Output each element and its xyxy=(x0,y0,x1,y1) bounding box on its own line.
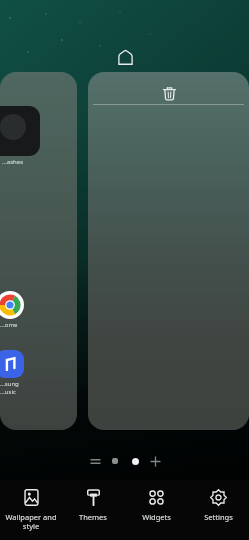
staticText: ...sung ...usic xyxy=(0,380,19,396)
button[interactable]: Home page xyxy=(112,44,138,70)
button[interactable]: Wallpaper and style xyxy=(0,480,62,532)
staticText: Widgets xyxy=(142,512,171,522)
staticText: ...ome xyxy=(0,321,18,329)
button[interactable]: Widgets xyxy=(125,480,187,522)
button[interactable]: Chrome xyxy=(0,291,24,319)
staticText: Settings xyxy=(204,512,233,522)
button[interactable]: Themes xyxy=(62,480,124,522)
button[interactable]: Samsung Music xyxy=(0,350,24,378)
button[interactable]: Settings xyxy=(187,480,249,522)
staticText: Themes xyxy=(79,512,107,522)
staticText: ...ashes xyxy=(2,158,24,166)
staticText: Wallpaper and style xyxy=(5,512,57,532)
button[interactable]: Page 1 xyxy=(107,453,123,469)
button[interactable]: Add page xyxy=(147,453,163,469)
button[interactable]: App list page xyxy=(87,453,103,469)
button[interactable]: Remove page xyxy=(88,72,249,430)
button[interactable]: ...ashes xyxy=(0,72,77,430)
button[interactable]: Remove page xyxy=(157,81,181,105)
button[interactable]: Page 2, current xyxy=(127,453,143,469)
